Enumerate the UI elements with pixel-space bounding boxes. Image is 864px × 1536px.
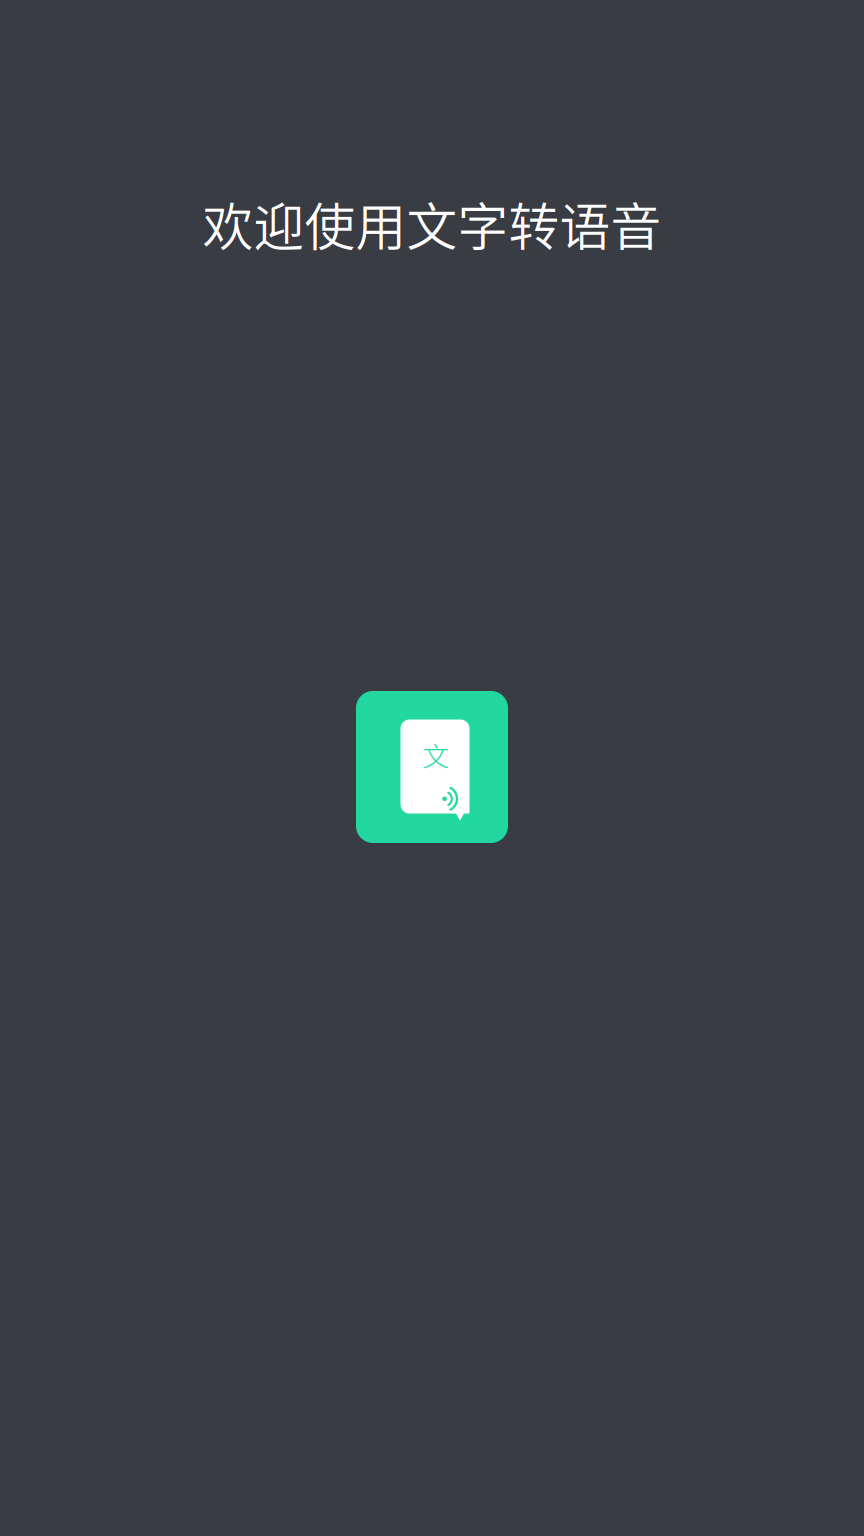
staticText: 欢迎使用文字转语音 (202, 187, 661, 260)
staticText: 文 (422, 735, 449, 774)
